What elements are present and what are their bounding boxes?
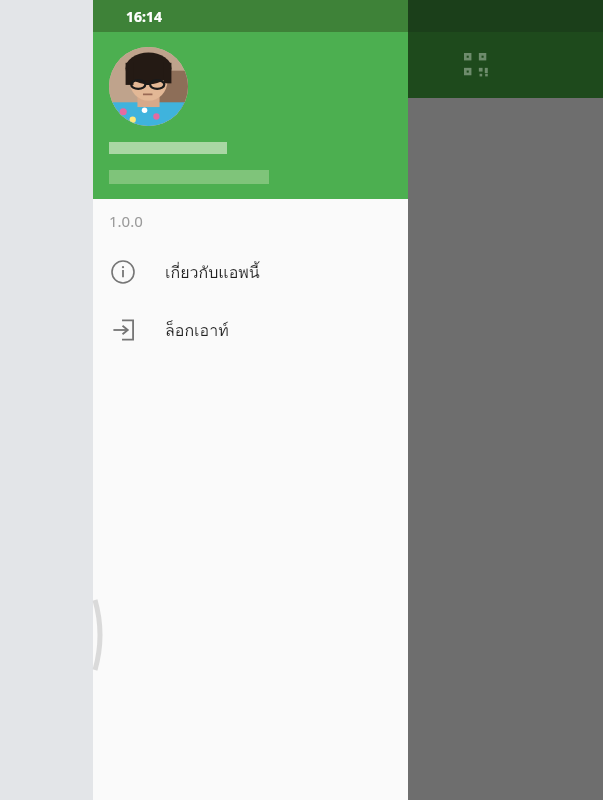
staticText: 16:14 bbox=[126, 7, 162, 26]
staticText: 1.0.0 bbox=[109, 211, 143, 231]
staticText: เกี่ยวกับแอพนี้ bbox=[165, 260, 260, 285]
button[interactable]: Scan QR code bbox=[455, 44, 499, 88]
button[interactable]: ล็อกเอาท์ bbox=[93, 301, 408, 359]
staticText: ล็อกเอาท์ bbox=[165, 318, 229, 343]
button[interactable]: เกี่ยวกับแอพนี้ bbox=[93, 243, 408, 301]
